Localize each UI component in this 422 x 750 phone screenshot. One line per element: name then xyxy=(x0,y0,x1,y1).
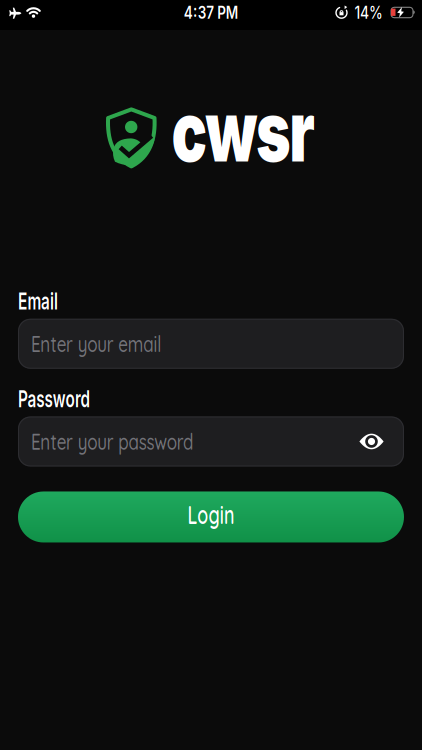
staticText: cwsr xyxy=(156,88,330,173)
staticText: 14% xyxy=(351,2,386,23)
staticText: 4:37 PM xyxy=(176,2,246,23)
staticText: Password xyxy=(18,386,124,412)
staticText: Enter your password xyxy=(31,428,239,455)
button[interactable]: Show password xyxy=(359,433,384,450)
button[interactable]: Enter your email xyxy=(18,319,404,369)
staticText: Email xyxy=(18,288,77,315)
staticText: Login xyxy=(177,499,244,530)
staticText: Enter your email xyxy=(31,330,198,357)
button[interactable]: Enter your password xyxy=(18,416,404,466)
button[interactable]: Login xyxy=(18,491,404,542)
